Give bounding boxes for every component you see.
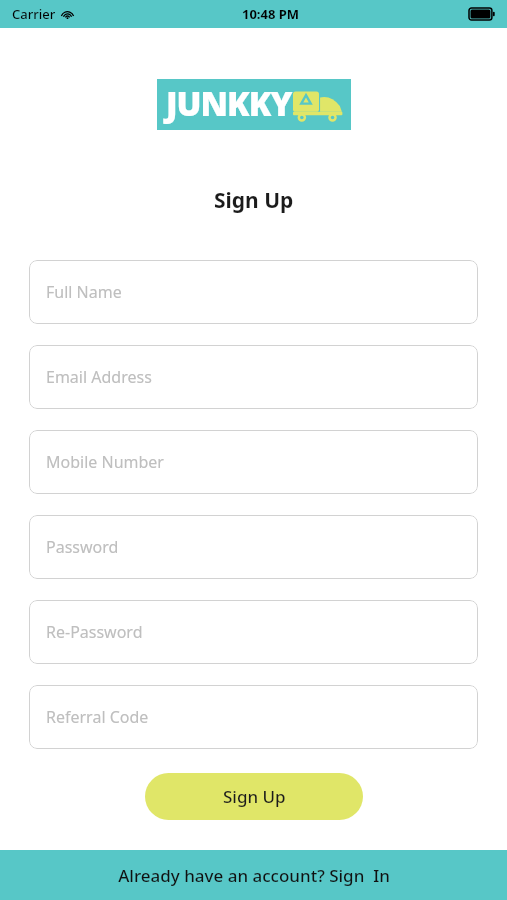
button[interactable]: Re-Password [29, 600, 478, 664]
staticText: Full Name [46, 281, 122, 303]
staticText: Password [46, 536, 119, 558]
button[interactable]: Mobile Number [29, 430, 478, 494]
staticText: Email Address [46, 366, 152, 388]
staticText: Sign Up [214, 186, 294, 215]
staticText: Already have an account? Sign In [118, 864, 390, 887]
staticText: Mobile Number [46, 451, 164, 473]
button[interactable]: Referral Code [29, 685, 478, 749]
staticText: Referral Code [46, 706, 149, 728]
button[interactable]: Sign Up [145, 773, 363, 820]
button[interactable]: Full Name [29, 260, 478, 324]
staticText: 10:48 PM [242, 5, 300, 23]
button[interactable]: Already have an account? Sign In [0, 850, 507, 900]
staticText: Sign Up [223, 785, 286, 808]
button[interactable]: Email Address [29, 345, 478, 409]
staticText: Carrier [12, 5, 56, 23]
staticText: JUNKKY [166, 81, 292, 126]
staticText: Re-Password [46, 621, 143, 643]
button[interactable]: Password [29, 515, 478, 579]
